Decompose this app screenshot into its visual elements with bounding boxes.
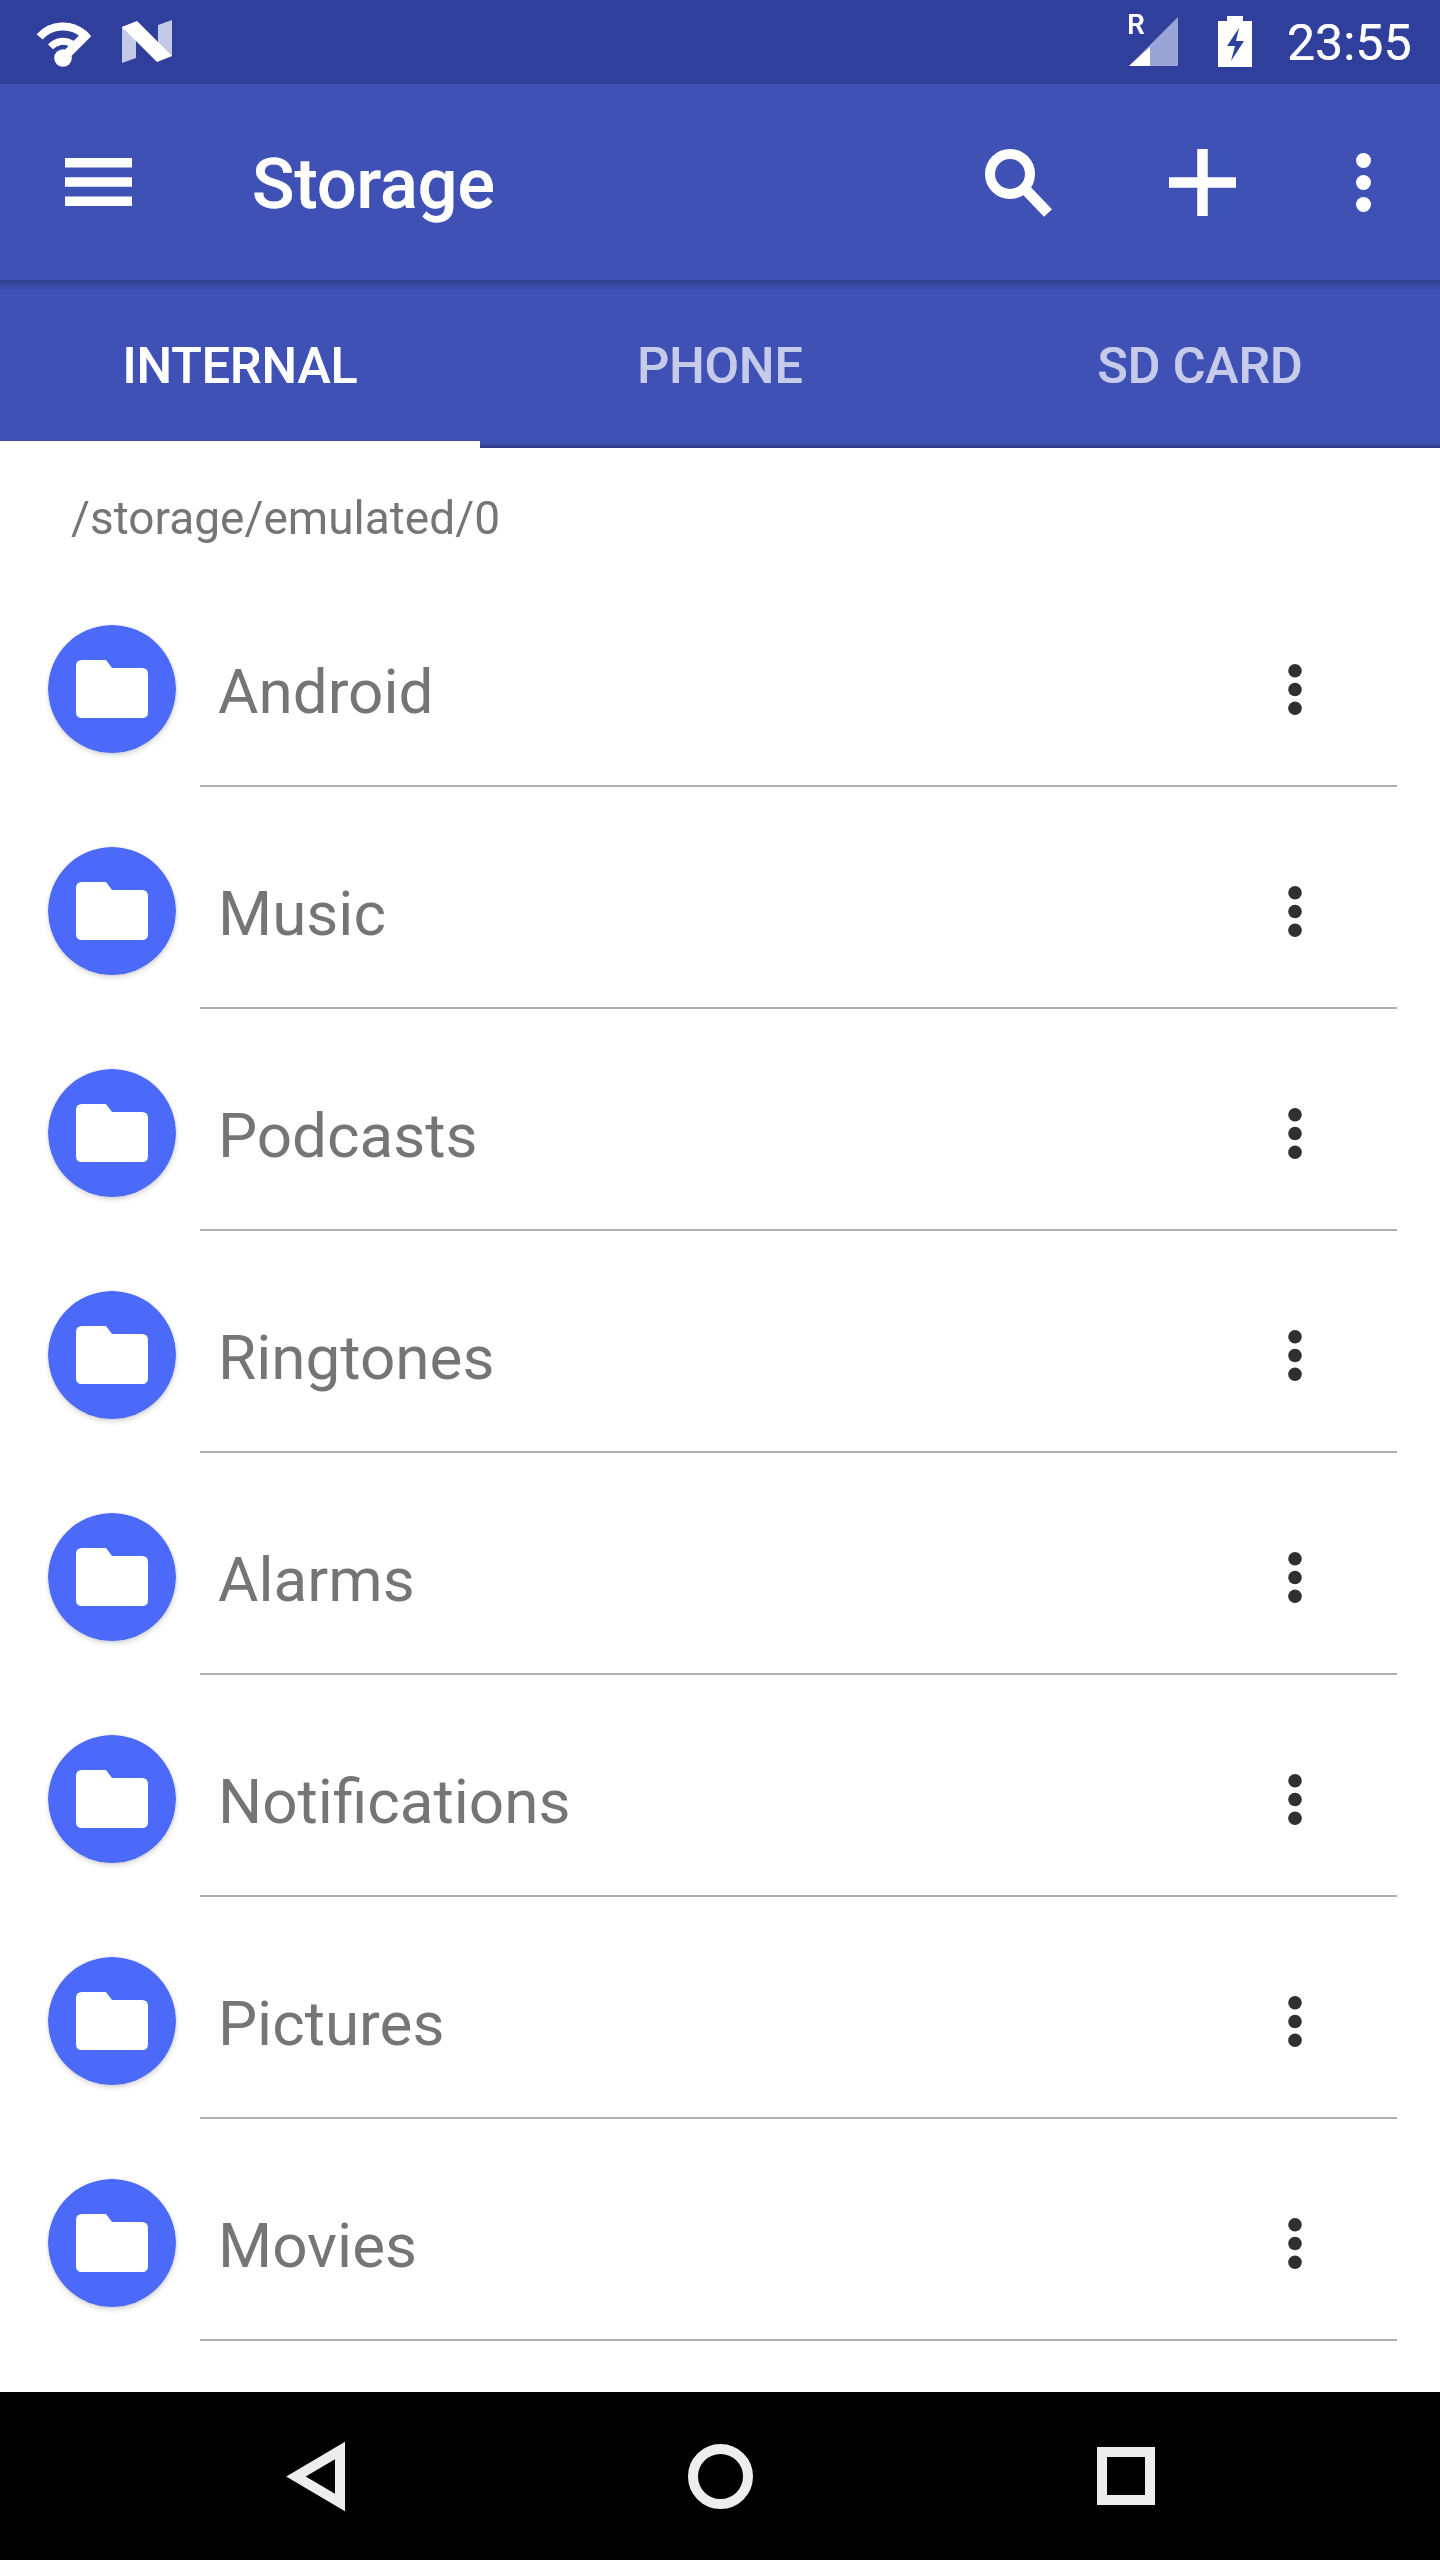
staticText: PHONE <box>637 337 803 396</box>
button[interactable]: Music <box>0 800 1440 1022</box>
button[interactable]: Home <box>636 2392 804 2560</box>
button[interactable]: More options for Alarms <box>1148 1513 1440 1641</box>
button[interactable]: More options for Music <box>1148 847 1440 975</box>
button[interactable]: Podcasts <box>0 1022 1440 1244</box>
staticText: Pictures <box>218 1987 445 2060</box>
staticText: R <box>1127 8 1145 41</box>
button[interactable]: More options for Pictures <box>1148 1957 1440 2085</box>
staticText: Android <box>218 655 434 728</box>
button[interactable]: Movies <box>0 2132 1440 2354</box>
button[interactable]: Search <box>935 100 1103 268</box>
staticText: Alarms <box>218 1543 415 1616</box>
button[interactable]: Add <box>1118 98 1286 266</box>
staticText: /storage/emulated/0 <box>71 491 500 545</box>
button[interactable]: More options for Podcasts <box>1148 1069 1440 1197</box>
staticText: Movies <box>218 2209 418 2282</box>
button[interactable]: INTERNAL <box>0 280 480 448</box>
staticText: SD CARD <box>1097 337 1303 396</box>
staticText: Ringtones <box>218 1321 495 1394</box>
button[interactable]: Pictures <box>0 1910 1440 2132</box>
staticText: Podcasts <box>218 1099 478 1172</box>
button[interactable]: Ringtones <box>0 1244 1440 1466</box>
button[interactable]: More options for Ringtones <box>1148 1291 1440 1419</box>
button[interactable]: More options for Notifications <box>1148 1735 1440 1863</box>
button[interactable]: More options for Movies <box>1148 2179 1440 2307</box>
button[interactable]: SD CARD <box>960 280 1440 448</box>
staticText: Music <box>218 877 386 950</box>
button[interactable]: More options for Android <box>1148 625 1440 753</box>
staticText: INTERNAL <box>122 337 358 396</box>
button[interactable]: PHONE <box>480 280 960 448</box>
button[interactable]: Alarms <box>0 1466 1440 1688</box>
staticText: Storage <box>252 143 496 225</box>
staticText: Notifications <box>218 1765 571 1838</box>
button[interactable]: Recent apps <box>1042 2392 1210 2560</box>
button[interactable]: More options <box>1279 98 1440 266</box>
button[interactable]: Open navigation drawer <box>14 98 182 266</box>
button[interactable]: Notifications <box>0 1688 1440 1910</box>
button[interactable]: Android <box>0 578 1440 800</box>
staticText: 23:55 <box>1287 14 1412 73</box>
button[interactable]: Back <box>234 2392 402 2560</box>
